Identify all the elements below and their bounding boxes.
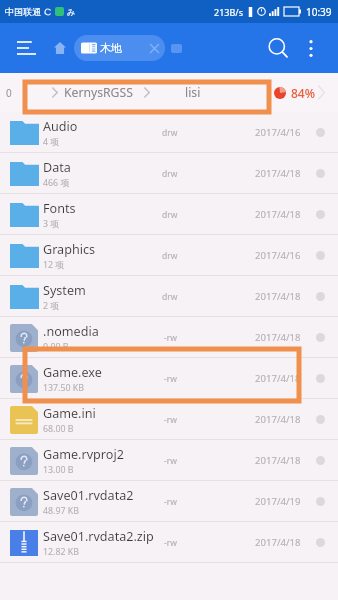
- staticText: 2017/4/18: [255, 536, 301, 549]
- button[interactable]: Game.exe: [0, 358, 338, 399]
- staticText: 2017/4/18: [255, 208, 301, 221]
- button[interactable]: Game.ini: [0, 399, 338, 440]
- staticText: 213B/s: [214, 6, 243, 18]
- button[interactable]: Save01.rvdata2.zip: [0, 522, 338, 563]
- staticText: 木地: [100, 41, 122, 55]
- staticText: 2017/4/16: [255, 126, 301, 139]
- staticText: -rw: [164, 496, 177, 508]
- staticText: -rw: [164, 455, 177, 467]
- staticText: Audio: [43, 118, 78, 135]
- staticText: drw: [162, 127, 178, 139]
- staticText: Game.ini: [43, 405, 96, 422]
- staticText: System: [43, 282, 86, 299]
- staticText: 0: [6, 86, 12, 100]
- staticText: Game.rvproj2: [43, 446, 124, 463]
- staticText: 2 项: [43, 300, 60, 312]
- staticText: Save01.rvdata2.zip: [43, 528, 154, 545]
- button[interactable]: Save01.rvdata2: [0, 481, 338, 522]
- staticText: 68.00 B: [43, 423, 74, 435]
- button[interactable]: More options: [298, 28, 324, 68]
- staticText: 4 项: [43, 136, 60, 148]
- staticText: Fonts: [43, 200, 76, 217]
- staticText: Save01.rvdata2: [43, 487, 134, 504]
- button[interactable]: Menu: [12, 31, 40, 65]
- staticText: 2017/4/18: [255, 290, 301, 303]
- staticText: .nomedia: [43, 323, 99, 340]
- staticText: み: [67, 7, 76, 17]
- staticText: drw: [162, 168, 178, 180]
- staticText: 466 项: [43, 177, 70, 189]
- button[interactable]: 木地: [74, 35, 165, 61]
- staticText: Game.exe: [43, 364, 102, 381]
- button[interactable]: Home: [49, 33, 71, 63]
- button[interactable]: Audio: [0, 112, 338, 153]
- staticText: 2017/4/18: [255, 331, 301, 344]
- staticText: Graphics: [43, 241, 96, 258]
- button[interactable]: Fonts: [0, 194, 338, 235]
- staticText: -rw: [164, 537, 177, 549]
- staticText: -rw: [164, 373, 177, 385]
- staticText: drw: [162, 209, 178, 221]
- staticText: drw: [162, 291, 178, 303]
- staticText: 2017/4/18: [255, 372, 301, 385]
- button[interactable]: .nomedia: [0, 317, 338, 358]
- staticText: -rw: [164, 332, 177, 344]
- staticText: 2017/4/18: [255, 167, 301, 180]
- button[interactable]: Search: [261, 28, 295, 68]
- staticText: 2017/4/19: [255, 495, 301, 508]
- staticText: -rw: [164, 414, 177, 426]
- staticText: Data: [43, 159, 71, 176]
- staticText: 48.97 KB: [43, 505, 79, 517]
- staticText: 12.82 KB: [43, 546, 79, 558]
- button[interactable]: System: [0, 276, 338, 317]
- button[interactable]: KernysRGSS: [64, 84, 133, 101]
- staticText: 12 项: [43, 259, 65, 271]
- staticText: 2017/4/18: [255, 454, 301, 467]
- staticText: 2017/4/16: [255, 249, 301, 262]
- staticText: drw: [162, 250, 178, 262]
- staticText: 2017/4/18: [255, 413, 301, 426]
- staticText: 0.00 B: [43, 341, 69, 353]
- staticText: 3 项: [43, 218, 60, 230]
- button[interactable]: Graphics: [0, 235, 338, 276]
- staticText: 84%: [291, 85, 315, 101]
- button[interactable]: Game.rvproj2: [0, 440, 338, 481]
- staticText: 13.00 B: [43, 464, 74, 476]
- staticText: 中国联通: [5, 6, 41, 17]
- staticText: 10:39: [306, 5, 332, 19]
- button[interactable]: Data: [0, 153, 338, 194]
- button[interactable]: lisi: [185, 84, 201, 101]
- staticText: 137.50 KB: [43, 382, 84, 394]
